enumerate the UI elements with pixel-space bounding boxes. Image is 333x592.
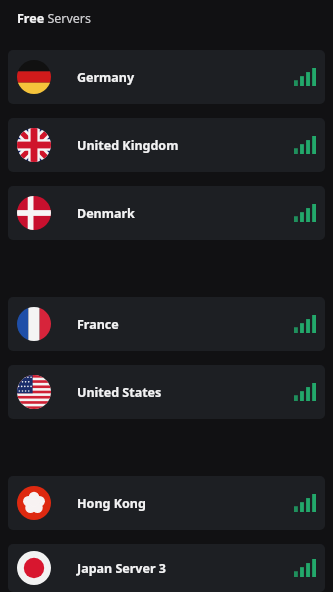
button[interactable]: Japan Server 3	[8, 544, 325, 592]
button[interactable]: United States	[8, 365, 325, 419]
staticText: Germany	[77, 69, 135, 86]
staticText: Japan Server 3	[77, 560, 166, 577]
staticText: United Kingdom	[77, 137, 179, 154]
staticText: United States	[77, 384, 162, 401]
staticText: France	[77, 316, 119, 333]
staticText: Denmark	[77, 205, 135, 222]
button[interactable]: United Kingdom	[8, 118, 325, 172]
staticText: Hong Kong	[77, 495, 146, 512]
button[interactable]: Germany	[8, 50, 325, 104]
button[interactable]: Denmark	[8, 186, 325, 240]
staticText: Free Servers	[17, 10, 92, 27]
button[interactable]: France	[8, 297, 325, 351]
button[interactable]: Hong Kong	[8, 476, 325, 530]
